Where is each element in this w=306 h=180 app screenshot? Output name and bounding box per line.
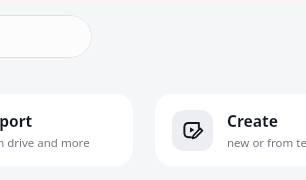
button[interactable]: Create new <box>155 94 306 166</box>
button[interactable]: Filter chip <box>0 15 92 58</box>
other: Create new <box>182 120 204 142</box>
staticText: from drive and more <box>0 135 90 151</box>
staticText: Import <box>0 110 33 131</box>
staticText: new or from template <box>227 135 306 151</box>
button[interactable]: Import <box>0 94 133 166</box>
staticText: Create <box>227 110 279 131</box>
